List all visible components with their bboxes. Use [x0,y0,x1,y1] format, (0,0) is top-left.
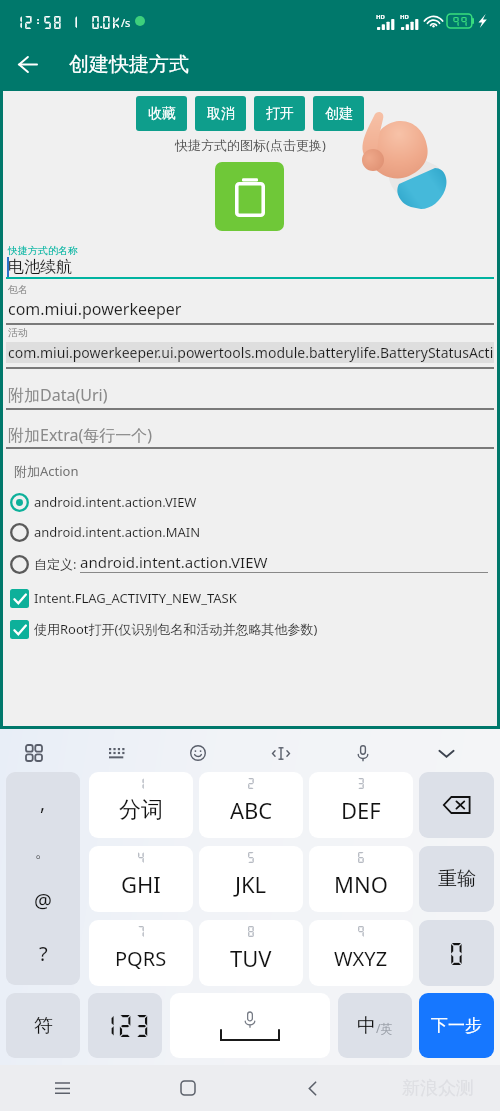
button[interactable]: 下一步 [419,993,494,1058]
button[interactable]: Emoji [184,739,212,767]
button[interactable]: 3 [309,772,413,838]
button[interactable]: Voice input [349,739,377,767]
staticText: HD [376,13,385,21]
staticText: 快捷方式的图标(点击更换) [175,136,326,154]
button[interactable]: 8 [199,920,303,986]
staticText: 包名 [8,283,28,296]
staticText: 8 [199,924,303,938]
staticText: 收藏 [148,105,176,123]
staticText: WXYZ [334,945,388,972]
staticText: 附加Action [14,462,79,480]
staticText: 4 [89,850,193,864]
staticText: 3 [309,776,413,790]
staticText: 。 [35,842,51,862]
button[interactable]: Back [250,1065,375,1111]
button[interactable]: Apps [20,739,48,767]
button[interactable]: 7 [89,920,193,986]
staticText: 123 [100,1012,151,1039]
staticText: 取消 [207,105,235,123]
staticText: 2 [199,776,303,790]
staticText: 7 [89,924,193,938]
button[interactable]: 使用Root打开(仅识别包名和活动并忽略其他参数) [3,614,497,644]
staticText: ? [39,940,48,967]
staticText: 5 [199,850,303,864]
staticText: TUV [230,943,272,973]
button[interactable]: Home [125,1065,250,1111]
staticText: com.miui.powerkeeper.ui.powertools.modul… [8,343,498,362]
staticText: Intent.FLAG_ACTIVITY_NEW_TASK [34,589,237,607]
staticText: 9 [309,924,413,938]
button[interactable]: Hide keyboard [432,739,460,767]
staticText: /s [121,15,131,30]
staticText: 快捷方式的名称 [8,244,78,257]
staticText: 活动 [8,326,28,339]
button[interactable]: 123 [88,993,162,1058]
staticText: 创建 [325,105,353,123]
staticText: 99 [452,15,468,28]
staticText: android.intent.action.VIEW [34,493,197,511]
staticText: 重输 [438,867,476,891]
staticText: 附加Data(Uri) [8,384,498,406]
button[interactable]: 9 [309,920,413,986]
button[interactable]: 中 [338,993,412,1058]
staticText: android.intent.action.MAIN [34,523,201,541]
staticText: 新浪众测 [402,1077,474,1100]
staticText: 符 [34,1014,53,1038]
button[interactable]: Text editing [267,739,295,767]
staticText: GHI [121,869,161,899]
staticText: 6 [309,850,413,864]
staticText: 电池续航 [8,257,498,277]
button[interactable]: Back [3,40,51,88]
staticText: JKL [235,869,267,899]
button[interactable]: 创建 [313,96,364,131]
button[interactable]: 6 [309,846,413,912]
staticText: HD [400,13,409,21]
staticText: 12:58 | 0.0K [14,14,121,29]
button[interactable]: android.intent.action.MAIN [3,517,497,547]
staticText: 下一步 [431,1015,482,1036]
staticText: 自定义: [34,555,77,573]
staticText: 0 [448,940,465,967]
staticText: 附加Extra(每行一个) [8,424,498,446]
staticText: android.intent.action.VIEW [80,552,268,572]
staticText: /英 [376,1020,393,1036]
staticText: 打开 [266,105,294,123]
staticText: , [40,790,46,816]
button[interactable]: Keyboard layout [102,739,130,767]
button[interactable]: , [6,772,80,985]
staticText: PQRS [115,945,167,972]
button[interactable]: Recent apps [0,1065,125,1111]
staticText: DEF [341,795,381,825]
button[interactable]: 重输 [419,846,494,912]
button[interactable]: 取消 [195,96,246,131]
button[interactable]: 自定义: [3,549,497,579]
staticText: 分词 [119,796,163,824]
staticText: 创建快捷方式 [69,52,189,77]
button[interactable]: Intent.FLAG_ACTIVITY_NEW_TASK [3,583,497,613]
button[interactable]: 0 [419,920,494,986]
staticText: 中 [357,1014,376,1038]
button[interactable]: Change icon [215,162,284,231]
button[interactable]: 打开 [254,96,305,131]
staticText: MNO [334,869,388,899]
button[interactable]: 2 [199,772,303,838]
staticText: 1 [89,776,193,790]
staticText: com.miui.powerkeeper [8,298,498,320]
button[interactable]: android.intent.action.VIEW [3,487,497,517]
button[interactable]: Space [170,993,330,1058]
staticText: @ [34,887,52,914]
staticText: ABC [230,795,273,825]
button[interactable]: 符 [6,993,80,1058]
button[interactable]: 4 [89,846,193,912]
button[interactable]: Backspace [419,772,494,838]
button[interactable]: 收藏 [136,96,187,131]
button[interactable]: 5 [199,846,303,912]
staticText: 使用Root打开(仅识别包名和活动并忽略其他参数) [34,620,318,638]
button[interactable]: 1 [89,772,193,838]
